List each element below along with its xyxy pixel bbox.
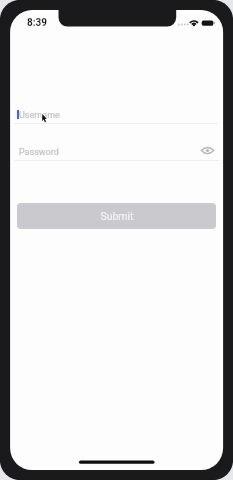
staticText: Submit [100,210,134,222]
button[interactable]: Show password [199,142,216,159]
staticText: 8:39 [27,17,48,29]
button[interactable]: Username [14,104,219,123]
staticText: Username [19,110,60,121]
button[interactable]: Password [14,141,219,159]
staticText: Password [19,147,59,158]
button[interactable]: Submit [17,203,216,229]
